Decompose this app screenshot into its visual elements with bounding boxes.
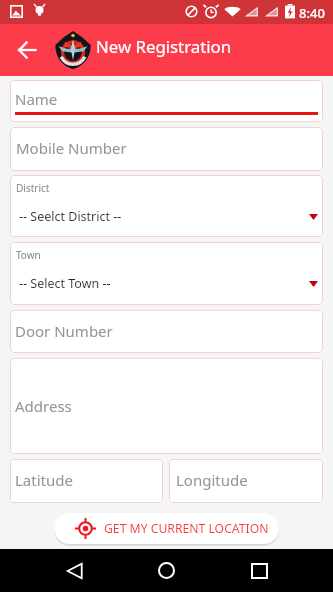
- button[interactable]: Latitude: [10, 459, 163, 503]
- button[interactable]: Back: [56, 552, 93, 589]
- staticText: Latitude: [15, 470, 73, 490]
- button[interactable]: Town: [10, 242, 323, 305]
- staticText: Door Number: [15, 321, 113, 341]
- button[interactable]: Back: [13, 36, 41, 64]
- staticText: Town: [16, 248, 41, 262]
- button[interactable]: Home: [148, 552, 185, 589]
- staticText: Name: [15, 89, 58, 109]
- button[interactable]: Mobile Number: [10, 127, 323, 171]
- button[interactable]: Address: [10, 358, 323, 454]
- staticText: GET MY CURRENT LOCATION: [104, 520, 269, 537]
- staticText: Address: [15, 396, 72, 416]
- button[interactable]: Name: [10, 80, 323, 122]
- staticText: -- Select Town --: [19, 275, 111, 292]
- staticText: District: [16, 181, 50, 195]
- staticText: New Registration: [96, 35, 232, 58]
- button[interactable]: GET MY CURRENT LOCATION: [54, 513, 279, 544]
- button[interactable]: Door Number: [10, 310, 323, 353]
- staticText: -- Seelct District --: [19, 208, 122, 225]
- staticText: Longitude: [176, 470, 248, 490]
- staticText: Mobile Number: [16, 138, 127, 158]
- button[interactable]: Longitude: [169, 459, 323, 503]
- staticText: 8:40: [299, 4, 325, 22]
- button[interactable]: District: [10, 175, 323, 237]
- button[interactable]: Recent apps: [241, 552, 278, 589]
